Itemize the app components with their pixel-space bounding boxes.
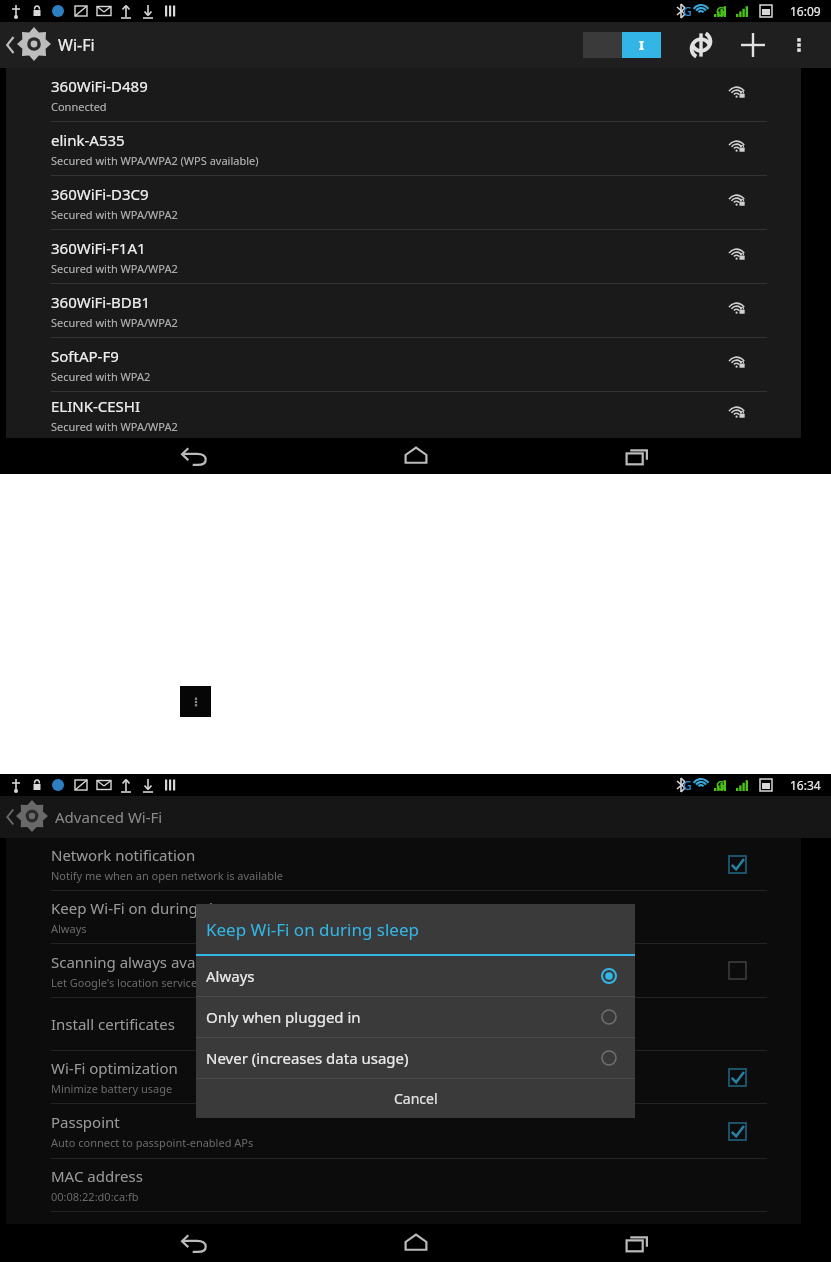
staticText: Advanced Wi-Fi — [55, 807, 163, 827]
button[interactable]: 360WiFi-D3C9 — [6, 176, 801, 230]
staticText: Scanning always available — [51, 952, 234, 972]
button[interactable]: elink-A535 — [6, 122, 801, 176]
button[interactable]: Back — [166, 438, 222, 474]
staticText: 360WiFi-BDB1 — [51, 292, 151, 312]
button[interactable]: Never (increases data usage) — [196, 1038, 635, 1079]
button[interactable]: Wi-Fi optimization — [6, 1051, 801, 1104]
staticText: G — [683, 3, 692, 19]
button[interactable]: SoftAP-F9 — [6, 338, 801, 392]
button[interactable]: Recents — [609, 438, 665, 474]
staticText: Always — [206, 966, 255, 986]
staticText: SoftAP-F9 — [51, 346, 119, 366]
staticText: 360WiFi-F1A1 — [51, 238, 146, 258]
staticText: ELINK-CESHI — [51, 396, 141, 416]
staticText: 16:34 — [790, 777, 821, 793]
staticText: Secured with WPA/WPA2 — [51, 261, 178, 276]
button[interactable]: MAC address — [6, 1159, 801, 1212]
staticText: Secured with WPA/WPA2 — [51, 207, 178, 222]
staticText: Secured with WPA/WPA2 — [51, 419, 178, 434]
staticText: Never (increases data usage) — [206, 1048, 409, 1068]
button[interactable]: Add network — [733, 25, 773, 65]
staticText: Auto connect to passpoint-enabled APs — [51, 1135, 254, 1150]
button[interactable]: Keep Wi-Fi on during sleep — [6, 891, 801, 944]
button[interactable]: ELINK-CESHI — [6, 392, 801, 438]
staticText: Keep Wi-Fi on during sleep — [51, 898, 239, 918]
button[interactable]: WPS — [681, 25, 721, 65]
button[interactable]: More options — [781, 27, 817, 63]
staticText: Wi-Fi optimization — [51, 1058, 178, 1078]
button[interactable]: Only when plugged in — [196, 997, 635, 1038]
button[interactable]: Install certificates — [6, 998, 801, 1051]
staticText: Notify me when an open network is availa… — [51, 868, 283, 883]
staticText: Only when plugged in — [206, 1007, 361, 1027]
staticText: Install certificates — [51, 1014, 175, 1034]
staticText: elink-A535 — [51, 130, 125, 150]
staticText: 360WiFi-D3C9 — [51, 184, 149, 204]
button[interactable]: 360WiFi-D489 — [6, 68, 801, 122]
staticText: Secured with WPA/WPA2 (WPS available) — [51, 153, 259, 168]
button[interactable]: Home — [388, 438, 444, 474]
staticText: Minimize battery usage — [51, 1081, 173, 1096]
staticText: Passpoint — [51, 1112, 120, 1132]
button[interactable]: Network notification — [6, 838, 801, 891]
staticText: 360WiFi-D489 — [51, 76, 148, 96]
staticText: Network notification — [51, 845, 196, 865]
button[interactable]: Recents — [609, 1224, 665, 1262]
staticText: MAC address — [51, 1166, 143, 1186]
staticText: G — [683, 777, 692, 793]
staticText: G — [716, 3, 725, 19]
button[interactable]: Back — [166, 1224, 222, 1262]
staticText: Let Google's location service... — [51, 975, 206, 990]
staticText: 00:08:22:d0:ca:fb — [51, 1189, 139, 1204]
button[interactable]: Home — [388, 1224, 444, 1262]
staticText: Cancel — [394, 1089, 438, 1108]
staticText: Secured with WPA2 — [51, 369, 151, 384]
staticText: Always — [51, 921, 87, 936]
staticText: Keep Wi-Fi on during sleep — [206, 918, 419, 941]
staticText: I — [639, 36, 645, 54]
button[interactable]: Scanning always available — [6, 944, 801, 998]
staticText: G — [716, 777, 725, 793]
staticText: 16:09 — [790, 3, 821, 19]
button[interactable]: Always — [196, 956, 635, 997]
button[interactable]: Passpoint — [6, 1104, 801, 1159]
button[interactable]: Cancel — [196, 1079, 635, 1118]
button[interactable]: 360WiFi-F1A1 — [6, 230, 801, 284]
staticText: Connected — [51, 99, 107, 114]
staticText: Secured with WPA/WPA2 — [51, 315, 178, 330]
button[interactable]: 360WiFi-BDB1 — [6, 284, 801, 338]
button[interactable]: Wi-Fi on/off — [583, 32, 661, 58]
button[interactable]: More options — [180, 686, 211, 717]
staticText: Wi-Fi — [58, 34, 95, 56]
